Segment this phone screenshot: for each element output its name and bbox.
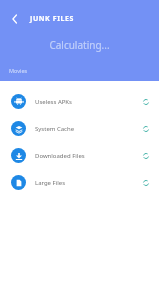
button[interactable]: System Cache xyxy=(0,116,159,141)
button[interactable]: Large Files xyxy=(0,170,159,195)
button[interactable]: Useless APKs xyxy=(0,89,159,114)
staticText: Large Files xyxy=(35,179,66,187)
staticText: Downloaded Files xyxy=(35,152,85,160)
staticText: JUNK FILES xyxy=(30,14,75,24)
button[interactable]: Back xyxy=(6,10,24,28)
staticText: Calculating... xyxy=(49,38,110,52)
staticText: Useless APKs xyxy=(35,98,72,106)
button[interactable]: Downloaded Files xyxy=(0,143,159,168)
staticText: System Cache xyxy=(35,125,75,133)
staticText: Movies xyxy=(9,67,28,74)
